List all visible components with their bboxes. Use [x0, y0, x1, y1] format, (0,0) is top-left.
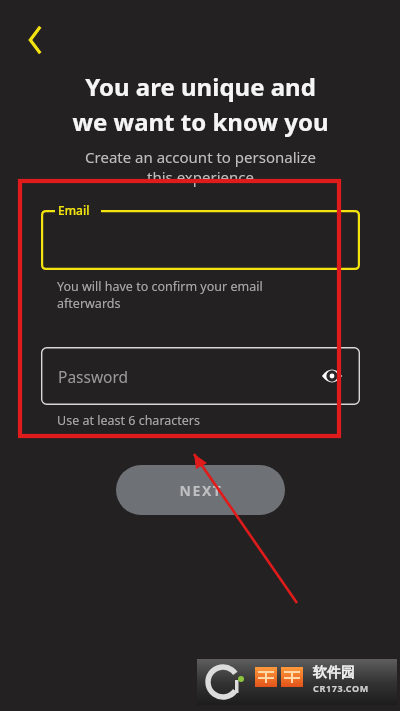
button[interactable]: Password [41, 347, 360, 405]
staticText: Use at least 6 characters [57, 412, 201, 429]
staticText: 软件园 [313, 664, 355, 682]
button[interactable] [41, 210, 360, 270]
staticText: this experience [147, 167, 254, 187]
staticText: CR173.COM [313, 682, 369, 694]
button[interactable]: Show password [316, 360, 348, 392]
button[interactable]: NEXT [116, 465, 285, 515]
staticText: Email [58, 202, 90, 218]
staticText: NEXT [179, 481, 223, 500]
staticText: You will have to confirm your email [57, 278, 263, 295]
staticText: we want to know you [72, 105, 329, 138]
staticText: Password [58, 366, 129, 387]
staticText: afterwards [57, 295, 121, 312]
staticText: Create an account to personalize [85, 147, 316, 167]
staticText: You are unique and [85, 70, 316, 103]
button[interactable]: Back [12, 18, 56, 62]
